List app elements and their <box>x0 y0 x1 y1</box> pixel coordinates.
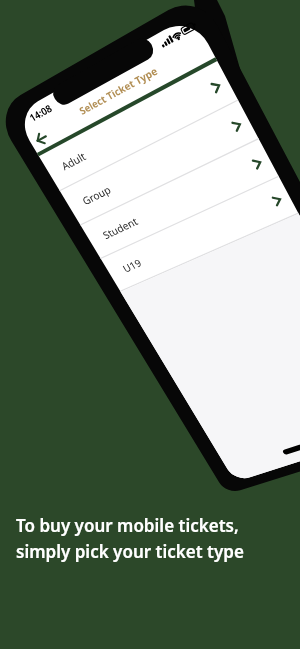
button[interactable] <box>80 175 230 215</box>
button[interactable] <box>115 262 265 302</box>
button[interactable] <box>60 130 210 170</box>
button[interactable] <box>30 128 56 154</box>
button[interactable] <box>100 220 250 260</box>
